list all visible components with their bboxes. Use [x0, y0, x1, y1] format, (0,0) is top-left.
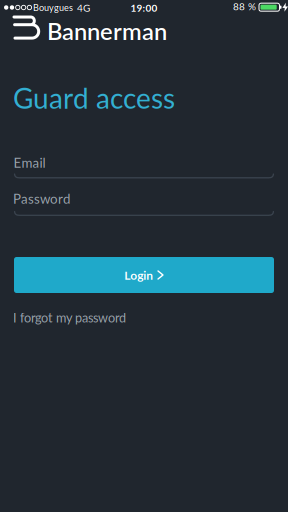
staticText: I forgot my password	[13, 310, 126, 325]
staticText: 4G	[77, 2, 90, 14]
button[interactable]: I forgot my password	[13, 310, 126, 325]
staticText: Bouygues	[33, 2, 73, 13]
staticText: Login	[124, 268, 153, 282]
staticText: Email	[14, 157, 46, 173]
button[interactable]: Login	[14, 257, 274, 293]
staticText: Bannerman	[47, 16, 167, 45]
staticText: Email	[14, 155, 46, 171]
staticText: Guard access	[13, 81, 175, 115]
staticText: Password	[14, 194, 71, 210]
secureTextField[interactable]: Password	[14, 194, 274, 210]
staticText: Password	[13, 191, 70, 207]
staticText: 19:00	[130, 2, 157, 14]
staticText: 88 %	[233, 0, 256, 12]
textField[interactable]: Email	[14, 157, 274, 173]
